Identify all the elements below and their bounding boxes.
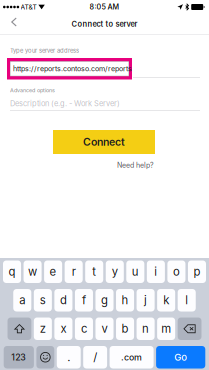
staticText: . <box>67 350 70 364</box>
staticText: q <box>8 265 15 279</box>
staticText: https://reports.contoso.com/reports <box>13 64 132 73</box>
button[interactable]: Shift <box>7 317 31 340</box>
staticText: AT&T <box>21 3 37 11</box>
staticText: h <box>121 293 128 307</box>
button[interactable]: a <box>13 289 31 311</box>
staticText: d <box>60 293 67 307</box>
button[interactable]: x <box>54 317 72 340</box>
button[interactable]: y <box>106 260 124 283</box>
button[interactable]: u <box>126 260 144 283</box>
staticText: o <box>173 265 180 279</box>
button[interactable]: q <box>3 260 21 283</box>
button[interactable]: .com <box>110 346 154 368</box>
staticText: Description (e.g. - Work Server) <box>10 99 120 108</box>
staticText: u <box>132 265 139 279</box>
staticText: Connect <box>83 136 125 148</box>
staticText: g <box>101 293 108 307</box>
staticText: b <box>121 322 128 336</box>
staticText: r <box>72 265 76 279</box>
staticText: Go <box>174 351 187 363</box>
button[interactable]: Go <box>156 346 205 368</box>
staticText: i <box>154 265 157 279</box>
staticText: v <box>101 322 107 336</box>
staticText: Type your server address <box>10 47 79 54</box>
staticText: e <box>50 265 57 279</box>
staticText: Advanced options <box>10 87 55 94</box>
staticText: s <box>40 293 46 307</box>
button[interactable]: o <box>167 260 185 283</box>
button[interactable]: j <box>137 289 155 311</box>
staticText: Need help? <box>117 161 154 169</box>
staticText: m <box>161 322 171 336</box>
button[interactable]: h <box>116 289 134 311</box>
button[interactable]: r <box>65 260 83 283</box>
staticText: / <box>93 350 97 364</box>
staticText: f <box>82 293 86 307</box>
button[interactable]: g <box>95 289 114 311</box>
button[interactable]: k <box>157 289 175 311</box>
button[interactable]: m <box>157 317 175 340</box>
staticText: 8:05 AM <box>89 3 119 11</box>
staticText: 123 <box>11 352 26 362</box>
staticText: y <box>112 265 118 279</box>
button[interactable]: 123 <box>4 346 34 368</box>
button[interactable]: v <box>95 317 114 340</box>
button[interactable]: Back <box>4 14 24 34</box>
button[interactable]: b <box>116 317 134 340</box>
staticText: p <box>193 265 200 279</box>
staticText: t <box>92 265 96 279</box>
button[interactable]: p <box>188 260 206 283</box>
staticText: Connect to server <box>71 19 137 28</box>
button[interactable]: Connect <box>53 130 155 154</box>
button[interactable]: / <box>83 346 107 368</box>
button[interactable]: e <box>44 260 62 283</box>
button[interactable]: Emoji <box>36 346 54 368</box>
staticText: n <box>142 322 149 336</box>
button[interactable]: t <box>85 260 103 283</box>
button[interactable]: . <box>57 346 81 368</box>
button[interactable]: s <box>34 289 52 311</box>
button[interactable]: n <box>137 317 155 340</box>
staticText: a <box>19 293 25 307</box>
button[interactable]: w <box>23 260 42 283</box>
staticText: c <box>81 322 87 336</box>
button[interactable]: z <box>34 317 52 340</box>
staticText: w <box>28 265 37 279</box>
staticText: k <box>163 293 169 307</box>
staticText: x <box>60 322 66 336</box>
button[interactable]: l <box>178 289 196 311</box>
button[interactable]: f <box>75 289 93 311</box>
button[interactable]: Delete <box>178 317 201 340</box>
button[interactable]: Need help? <box>117 161 154 169</box>
staticText: z <box>40 322 46 336</box>
staticText: .com <box>121 352 142 362</box>
staticText: l <box>185 293 188 307</box>
button[interactable]: d <box>54 289 72 311</box>
staticText: j <box>144 293 147 307</box>
button[interactable]: c <box>75 317 93 340</box>
button[interactable]: i <box>147 260 165 283</box>
